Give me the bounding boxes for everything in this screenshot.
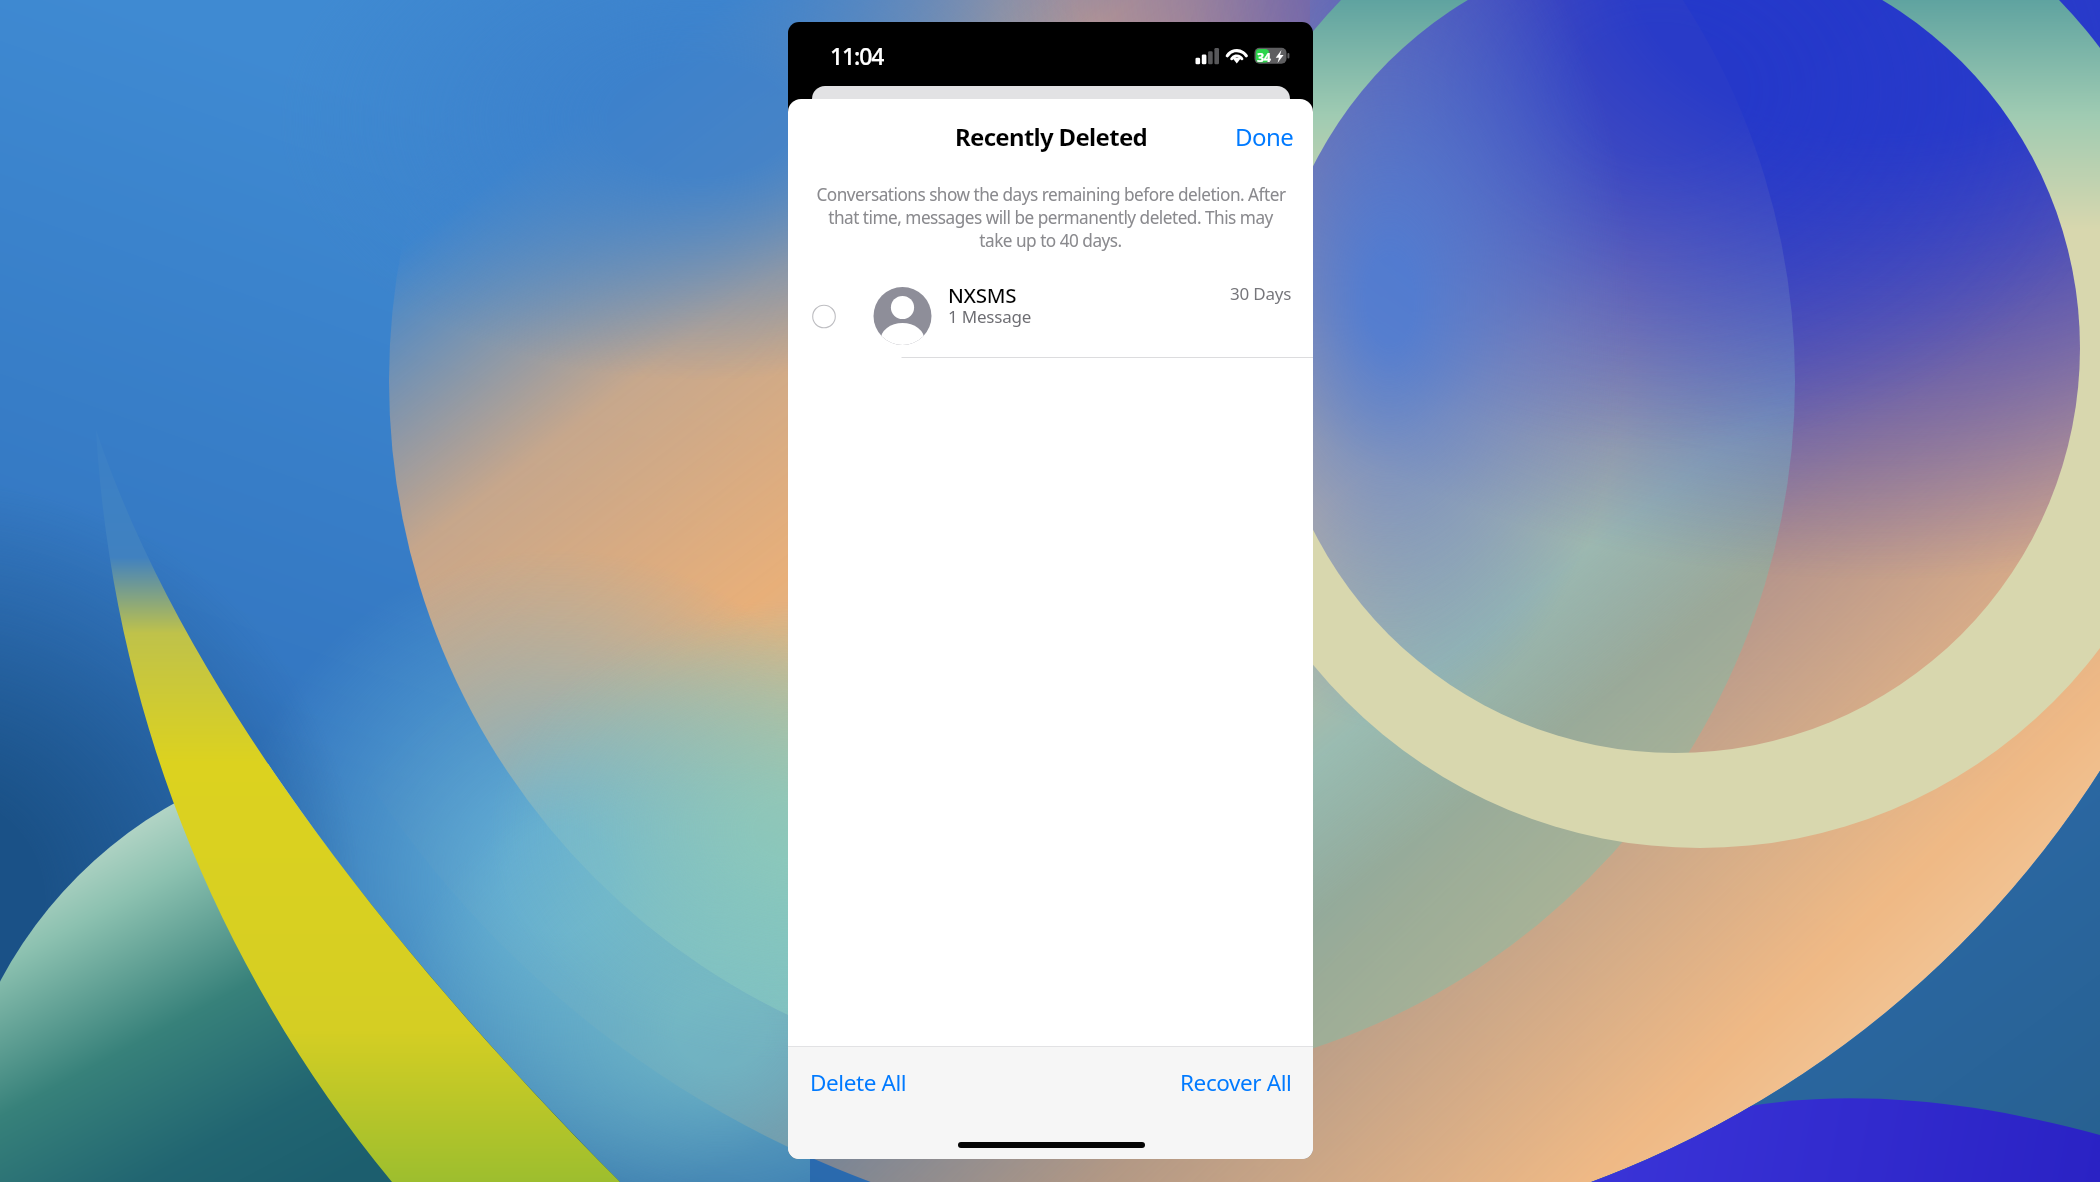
- staticText: 30 Days: [1230, 282, 1292, 305]
- staticText: 11:04: [830, 40, 884, 71]
- staticText: Conversations show the days remaining be…: [816, 183, 1286, 206]
- staticText: Delete All: [810, 1067, 907, 1098]
- button[interactable]: Done: [1216, 110, 1313, 163]
- staticText: that time, messages will be permanently …: [828, 206, 1273, 229]
- staticText: take up to 40 days.: [979, 229, 1122, 252]
- button[interactable]: Delete All: [788, 1056, 929, 1109]
- staticText: Done: [1235, 120, 1294, 153]
- button[interactable]: NXSMS: [788, 272, 1313, 358]
- staticText: NXSMS: [948, 281, 1017, 309]
- button[interactable]: Recover All: [1159, 1056, 1313, 1109]
- staticText: 34: [1257, 49, 1271, 66]
- staticText: Recover All: [1180, 1067, 1292, 1098]
- staticText: 1 Message: [948, 305, 1032, 328]
- staticText: Recently Deleted: [955, 120, 1147, 153]
